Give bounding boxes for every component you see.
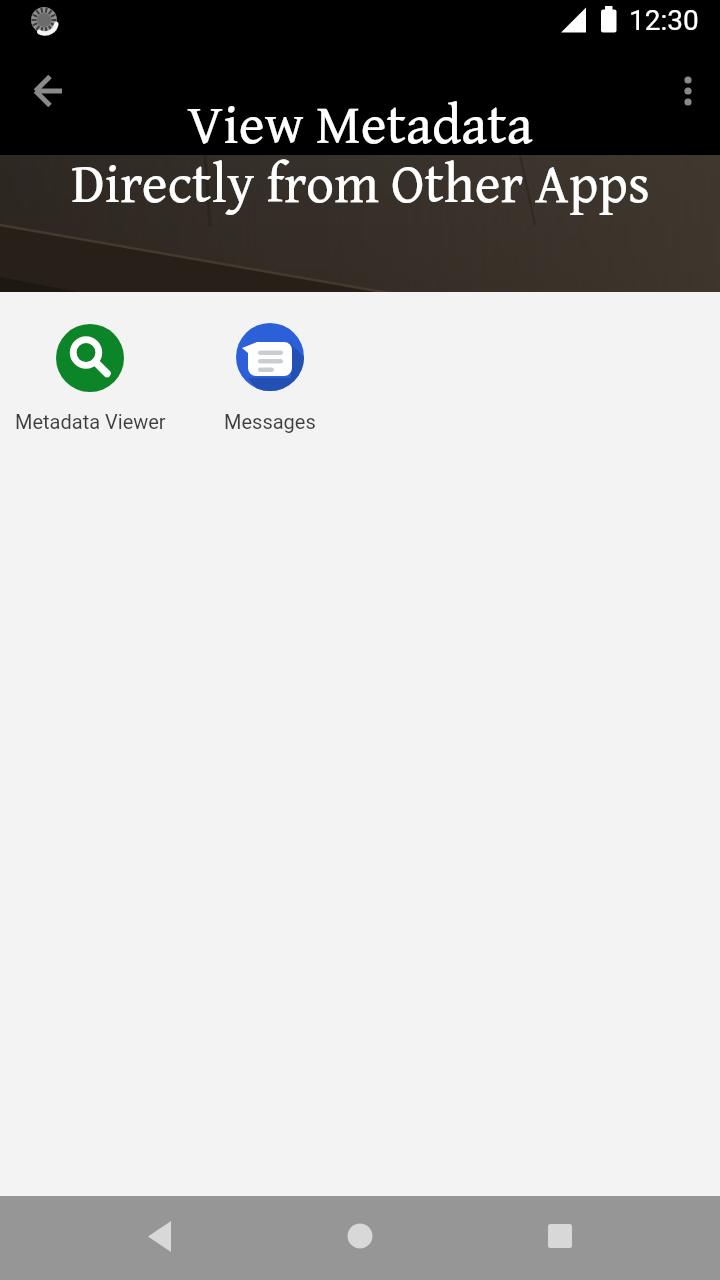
staticText: Directly from Other Apps (71, 142, 650, 223)
button[interactable] (21, 63, 77, 119)
button[interactable] (336, 1212, 384, 1260)
button[interactable]: Metadata Viewer (0, 310, 180, 440)
button[interactable] (536, 1212, 584, 1260)
button[interactable] (136, 1212, 184, 1260)
staticText: 12:30 (629, 4, 699, 37)
staticText: Metadata Viewer (15, 410, 166, 433)
button[interactable] (664, 67, 712, 115)
button[interactable]: Messages (180, 310, 360, 440)
staticText: Messages (224, 410, 316, 433)
staticText: View Metadata (187, 83, 533, 164)
